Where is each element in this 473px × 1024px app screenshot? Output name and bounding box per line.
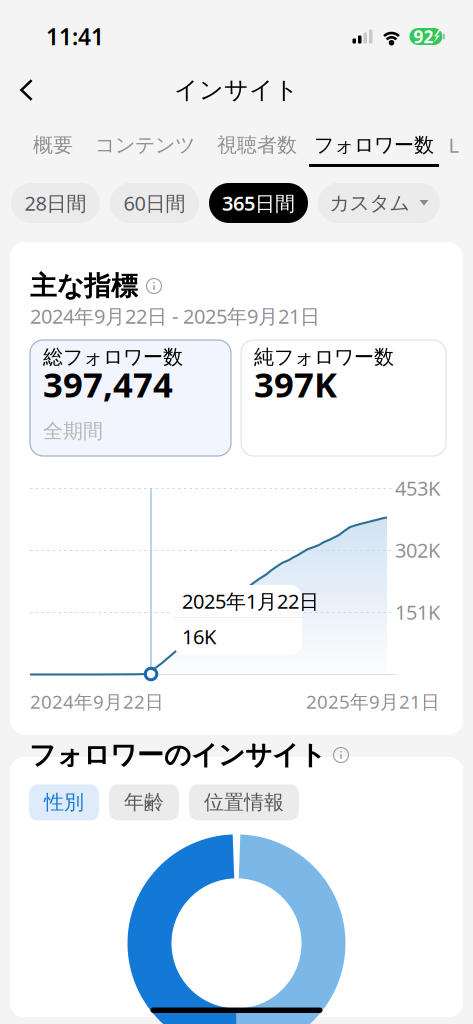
button[interactable]: 位置情報 — [189, 784, 299, 820]
staticText: 453K — [395, 475, 440, 501]
staticText: 年齢 — [124, 790, 164, 815]
staticText: 2025年9月21日 — [306, 689, 440, 714]
staticText: 主な指標 — [30, 270, 138, 302]
staticText: 151K — [395, 599, 440, 625]
staticText: 397K — [254, 361, 337, 407]
staticText: 純フォロワー数 — [254, 345, 394, 369]
staticText: カスタム — [329, 191, 409, 215]
button[interactable]: Back — [0, 68, 51, 112]
button[interactable]: 性別 — [29, 784, 99, 820]
staticText: 2025年1月22日 — [182, 588, 319, 614]
button[interactable]: 視聴者数 — [205, 107, 309, 167]
button[interactable]: L — [439, 107, 468, 167]
staticText: 16K — [182, 623, 216, 650]
staticText: 397,474 — [43, 361, 173, 407]
button[interactable]: 概要 — [21, 107, 85, 167]
button[interactable]: 純フォロワー数 — [241, 340, 446, 456]
staticText: フォロワー数 — [314, 133, 434, 157]
button[interactable]: 28日間 — [11, 183, 100, 223]
staticText: 60日間 — [123, 190, 185, 216]
staticText: 全期間 — [43, 419, 103, 443]
staticText: L — [448, 132, 458, 158]
staticText: インサイト — [174, 75, 299, 105]
button[interactable]: 365日間 — [209, 183, 308, 223]
staticText: 302K — [395, 537, 440, 563]
staticText: 92 — [413, 25, 433, 48]
staticText: 総フォロワー数 — [43, 345, 183, 369]
button[interactable]: コンテンツ — [85, 107, 205, 167]
staticText: 365日間 — [222, 190, 295, 216]
button[interactable]: 総フォロワー数 — [30, 340, 231, 456]
staticText: フォロワーのインサイト — [29, 739, 326, 771]
staticText: 概要 — [33, 133, 73, 157]
button[interactable]: カスタム — [318, 183, 440, 223]
staticText: 28日間 — [24, 190, 86, 216]
staticText: 視聴者数 — [217, 133, 297, 157]
staticText: 位置情報 — [204, 790, 284, 815]
staticText: 性別 — [44, 790, 84, 815]
button[interactable]: 60日間 — [110, 183, 199, 223]
button[interactable]: 年齢 — [109, 784, 179, 820]
staticText: 2024年9月22日 — [30, 689, 164, 714]
staticText: 11:41 — [46, 21, 104, 51]
staticText: 2024年9月22日 - 2025年9月21日 — [30, 303, 320, 329]
staticText: コンテンツ — [95, 133, 195, 157]
button[interactable]: フォロワー数 — [309, 107, 439, 167]
